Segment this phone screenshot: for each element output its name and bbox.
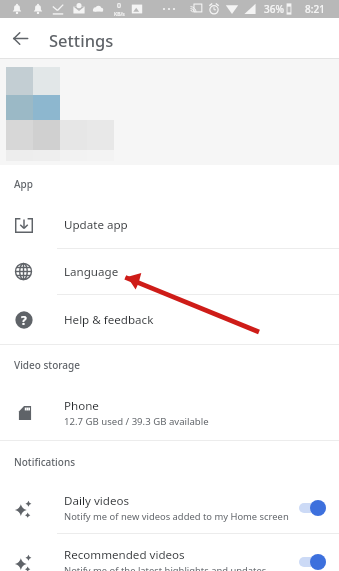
- staticText: App: [14, 177, 33, 191]
- staticText: 8:21: [305, 2, 325, 16]
- staticText: 12.7 GB used / 39.3 GB available: [64, 415, 209, 428]
- button[interactable]: Recommended videos: [0, 534, 339, 570]
- staticText: Language: [64, 264, 119, 280]
- staticText: Phone: [64, 398, 99, 414]
- staticText: KB/s: [114, 11, 125, 18]
- staticText: Video storage: [14, 358, 80, 372]
- staticText: Notify me of new videos added to my Home…: [64, 510, 289, 523]
- button[interactable]: Daily videos: [0, 483, 339, 534]
- staticText: Notify me of the latest highlights and u…: [64, 564, 267, 571]
- staticText: Update app: [64, 217, 128, 233]
- staticText: Daily videos: [64, 493, 129, 509]
- button[interactable]: Phone: [0, 385, 339, 440]
- staticText: Help & feedback: [64, 312, 154, 328]
- staticText: Notifications: [14, 455, 76, 469]
- staticText: 36%: [264, 2, 284, 16]
- staticText: Settings: [49, 29, 114, 51]
- button[interactable]: Language: [0, 249, 339, 295]
- staticText: Recommended videos: [64, 547, 185, 563]
- staticText: 0: [117, 1, 122, 11]
- button[interactable]: ?: [0, 295, 339, 344]
- button[interactable]: Update app: [0, 202, 339, 249]
- staticText: ?: [21, 312, 27, 328]
- button[interactable]: Back: [0, 18, 41, 59]
